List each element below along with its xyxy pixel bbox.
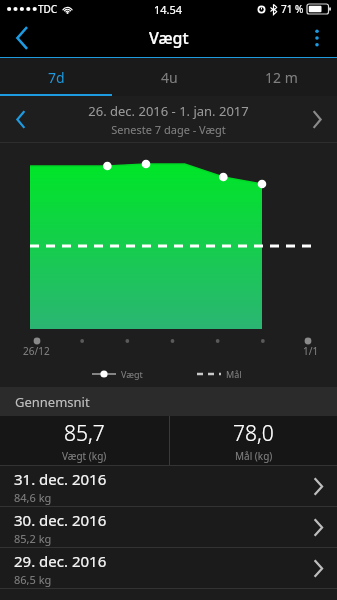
staticText: 85,2 kg <box>14 531 52 546</box>
button[interactable]: 4u <box>113 58 225 96</box>
button[interactable]: More options <box>297 18 337 58</box>
button[interactable]: Previous period <box>0 96 40 143</box>
staticText: 26/12 <box>23 344 50 358</box>
staticText: 84,6 kg <box>14 490 52 505</box>
staticText: 26. dec. 2016 - 1. jan. 2017 <box>88 102 249 120</box>
button[interactable]: 29. dec. 2016 <box>0 548 337 589</box>
staticText: Gennemsnit <box>15 393 90 411</box>
staticText: Vægt (kg) <box>62 449 107 463</box>
button[interactable]: 12 m <box>225 58 337 96</box>
button[interactable]: Back <box>0 18 44 58</box>
staticText: TDC <box>38 2 58 16</box>
staticText: 85,7 <box>64 419 105 448</box>
staticText: Mål <box>226 368 242 380</box>
staticText: 78,0 <box>233 419 274 448</box>
staticText: 31. dec. 2016 <box>14 469 107 489</box>
staticText: 12 m <box>265 68 298 87</box>
staticText: 7d <box>48 68 65 87</box>
staticText: Seneste 7 dage - Vægt <box>111 122 226 137</box>
button[interactable]: 31. dec. 2016 <box>0 466 337 507</box>
staticText: 86,5 kg <box>14 572 52 587</box>
staticText: 1/1 <box>303 344 319 358</box>
button[interactable]: Next period <box>297 96 337 143</box>
staticText: 30. dec. 2016 <box>14 510 107 530</box>
staticText: Mål (kg) <box>235 449 273 463</box>
button[interactable]: 30. dec. 2016 <box>0 507 337 548</box>
staticText: Vægt <box>149 27 189 49</box>
staticText: 4u <box>161 68 178 87</box>
staticText: Vægt <box>121 368 143 380</box>
staticText: 14.54 <box>154 2 183 17</box>
button[interactable]: 7d <box>0 58 113 96</box>
staticText: 29. dec. 2016 <box>14 551 107 571</box>
staticText: 71 % <box>281 2 304 16</box>
